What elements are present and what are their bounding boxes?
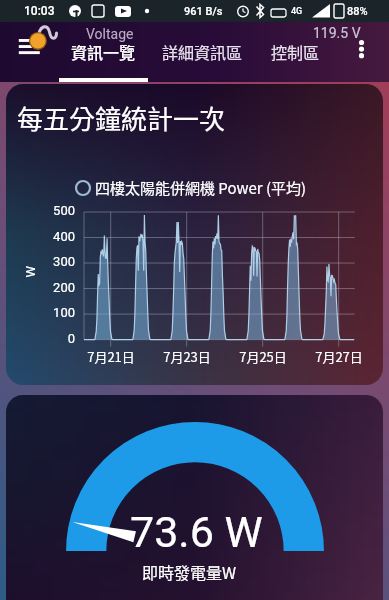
staticText: 四樓太陽能併網機 Power (平均) <box>95 177 307 199</box>
button[interactable]: 控制區 <box>264 38 326 64</box>
staticText: 88% <box>347 5 368 18</box>
staticText: 4G <box>291 6 303 17</box>
button[interactable]: More options <box>350 34 374 64</box>
button[interactable]: 詳細資訊區 <box>155 38 249 64</box>
staticText: 即時發電量W <box>142 560 237 583</box>
staticText: 7月23日 <box>139 347 235 366</box>
staticText: 961 B/s <box>184 5 223 18</box>
staticText: 10:03 <box>24 4 55 18</box>
staticText: 0 <box>50 331 75 346</box>
staticText: 73.6 W <box>130 507 263 557</box>
staticText: 資訊一覽 <box>71 40 136 63</box>
staticText: 7月27日 <box>291 347 383 366</box>
staticText: 7月25日 <box>215 347 311 366</box>
staticText: 7月21日 <box>63 347 159 366</box>
button[interactable]: 資訊一覽 <box>58 38 148 64</box>
staticText: 100 <box>50 305 75 320</box>
button[interactable]: Open navigation menu <box>8 22 64 62</box>
staticText: Voltage <box>86 26 134 42</box>
staticText: 500 <box>50 203 75 218</box>
staticText: 400 <box>50 229 75 244</box>
staticText: 119.5 V <box>313 25 361 41</box>
staticText: 控制區 <box>271 40 320 63</box>
staticText: 每五分鐘統計一次 <box>17 99 226 137</box>
staticText: W <box>22 265 37 277</box>
staticText: 300 <box>50 254 75 269</box>
staticText: 詳細資訊區 <box>162 40 243 63</box>
staticText: 200 <box>50 280 75 295</box>
